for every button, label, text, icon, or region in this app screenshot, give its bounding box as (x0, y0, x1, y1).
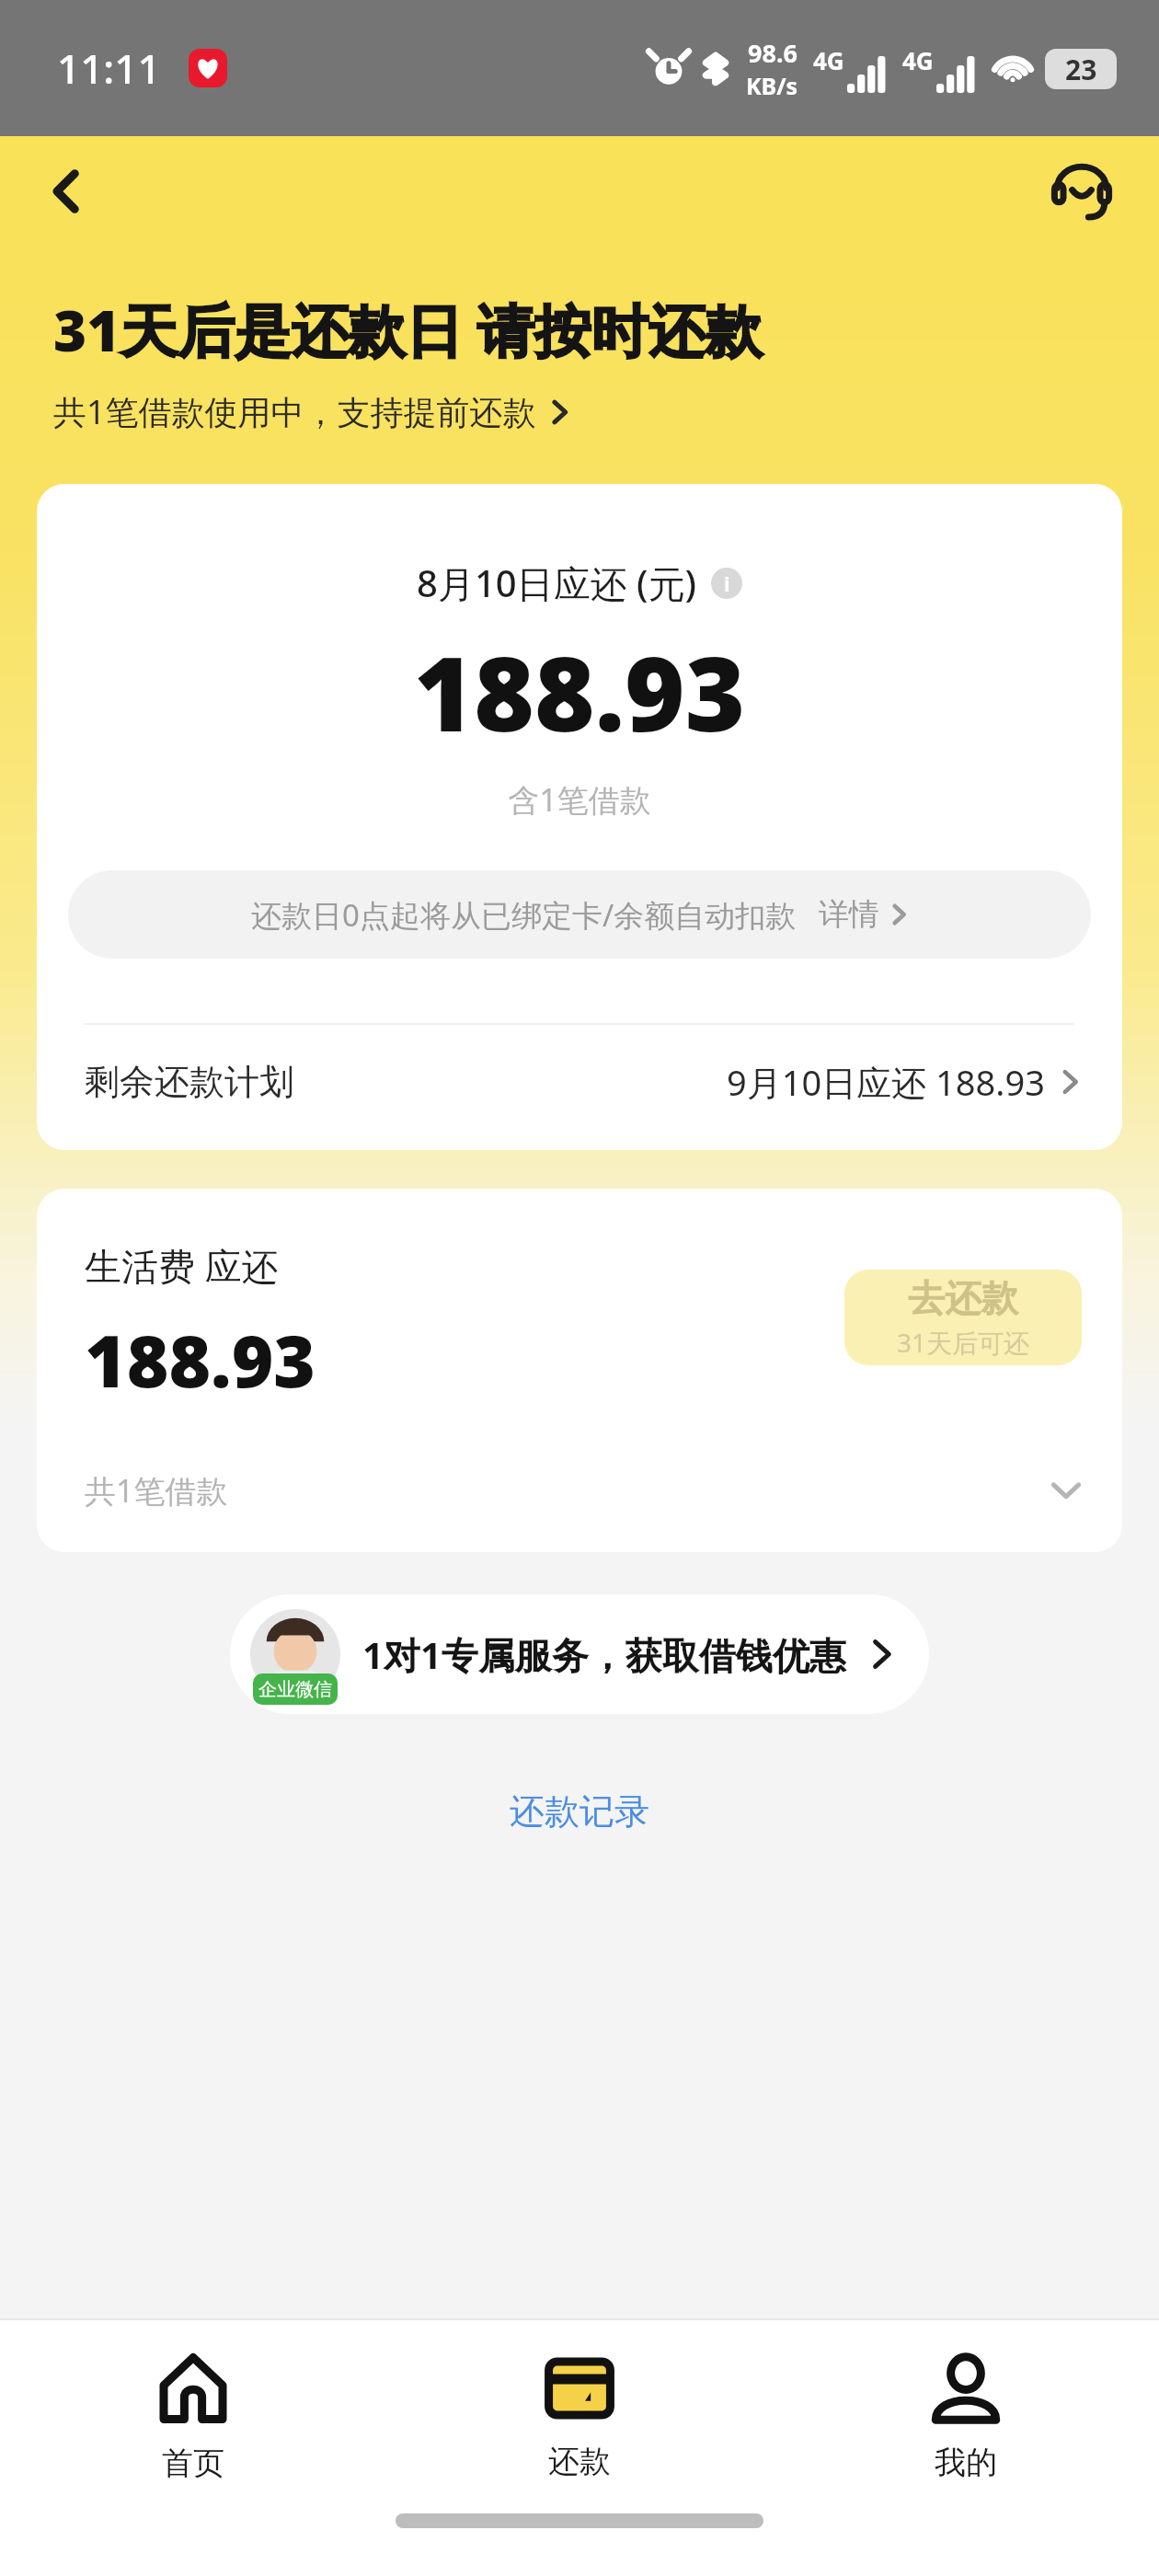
staticText: 还款 (548, 2442, 611, 2481)
button[interactable]: 客服 (1038, 147, 1126, 236)
staticText: 9月10日应还 188.93 (727, 1058, 1045, 1106)
staticText: 共1笔借款使用中，支持提前还款 (53, 389, 536, 434)
button[interactable]: 还款日0点起将从已绑定卡/余额自动扣款 (68, 870, 1091, 959)
staticText: KB/s (746, 70, 798, 101)
staticText: 剩余还款计划 (85, 1060, 294, 1104)
staticText: 4G (813, 44, 844, 76)
staticText: 188.93 (85, 1311, 316, 1409)
staticText: 11:11 (57, 40, 161, 96)
staticText: 还款日0点起将从已绑定卡/余额自动扣款 (251, 894, 797, 936)
staticText: 首页 (162, 2444, 224, 2483)
staticText: 31天后是还款日 请按时还款 (53, 291, 763, 369)
button[interactable]: 返回 (26, 150, 109, 233)
staticText: 生活费 应还 (85, 1240, 279, 1291)
staticText: 去还款 (908, 1275, 1018, 1321)
button[interactable]: 共1笔借款 (85, 1469, 1082, 1512)
staticText: 详情 (819, 895, 879, 934)
staticText: 8月10日应还 (元) (417, 558, 696, 608)
staticText: 23 (1065, 51, 1097, 88)
staticText: i (724, 569, 730, 597)
button[interactable]: 共1笔借款使用中，支持提前还款 (53, 389, 571, 434)
staticText: 31天后可还 (897, 1325, 1030, 1360)
button[interactable]: 我的 (773, 2320, 1159, 2513)
button[interactable]: 还款记录 (0, 1780, 1159, 1843)
button[interactable]: 首页 (0, 2320, 386, 2513)
staticText: 含1笔借款 (37, 778, 1122, 821)
button[interactable]: 剩余还款计划 (37, 1025, 1122, 1139)
staticText: 共1笔借款 (85, 1469, 228, 1512)
button[interactable]: 说明 (711, 568, 742, 599)
staticText: 企业微信 (258, 1678, 332, 1701)
button[interactable]: 去还款 (844, 1270, 1082, 1365)
staticText: 188.93 (37, 621, 1122, 762)
button[interactable]: 企业微信 (230, 1594, 929, 1714)
staticText: 98.6 (748, 36, 798, 70)
staticText: 4G (902, 44, 934, 76)
staticText: 1对1专属服务，获取借钱优惠 (362, 1629, 846, 1680)
button[interactable]: 还款 (386, 2320, 773, 2513)
staticText: 我的 (935, 2443, 997, 2482)
